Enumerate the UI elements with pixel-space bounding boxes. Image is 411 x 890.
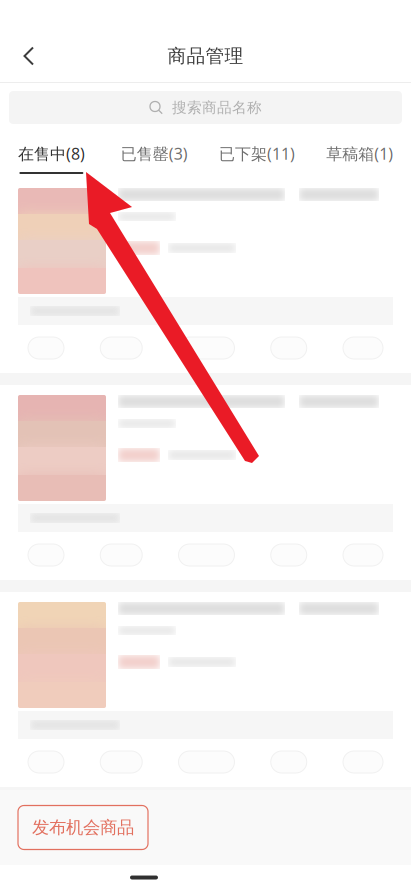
button[interactable]: 已售罄(3) <box>103 135 206 178</box>
button[interactable]: 发布机会商品 <box>18 805 148 849</box>
staticText: 草稿箱(1) <box>326 143 393 164</box>
staticText: 商品管理 <box>167 44 243 67</box>
button[interactable] <box>178 337 234 359</box>
button[interactable]: 已下架(11) <box>205 135 308 178</box>
staticText: 搜索商品名称 <box>172 98 262 116</box>
button[interactable]: 草稿箱(1) <box>308 135 411 178</box>
staticText: 已售罄(3) <box>121 143 188 164</box>
button[interactable]: 在售中(8) <box>0 135 103 178</box>
button[interactable]: Back <box>6 33 52 79</box>
staticText: 发布机会商品 <box>32 817 134 838</box>
button[interactable]: 搜索商品名称 <box>0 83 411 135</box>
staticText: 已下架(11) <box>219 143 295 164</box>
button[interactable] <box>0 178 411 373</box>
staticText: 在售中(8) <box>18 143 85 164</box>
button[interactable] <box>0 592 411 787</box>
button[interactable] <box>0 385 411 580</box>
